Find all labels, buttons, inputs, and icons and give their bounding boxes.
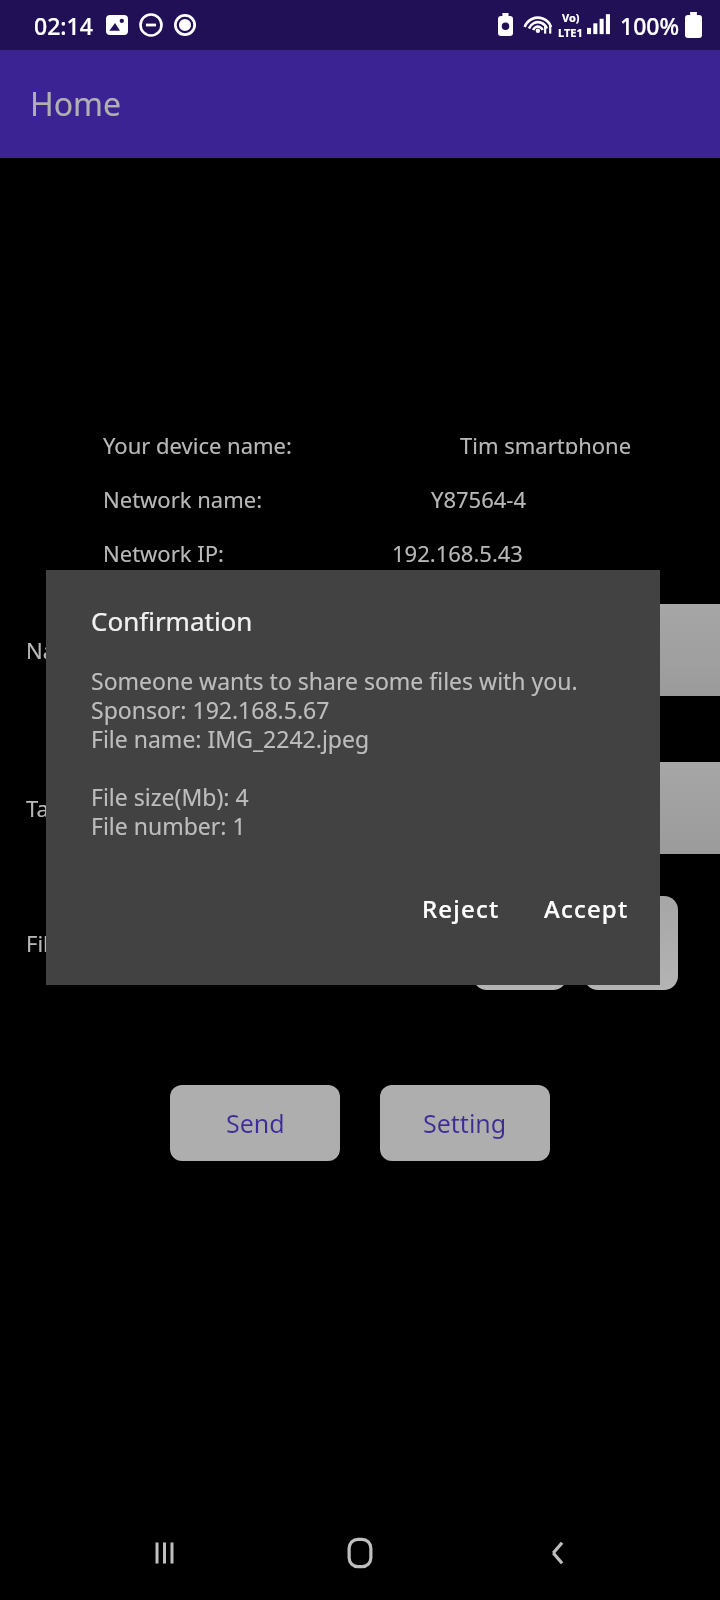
staticText: Accept (544, 892, 629, 925)
button[interactable]: Name field (520, 604, 720, 696)
staticText: 192.168.5.43 (392, 538, 523, 562)
staticText: Your device name: (103, 430, 292, 454)
staticText: File (26, 928, 62, 958)
staticText: Setting (423, 1106, 507, 1140)
button[interactable]: Target field (520, 762, 720, 854)
staticText: Home (30, 82, 122, 126)
button[interactable]: Send (170, 1085, 340, 1161)
button[interactable]: Recent apps (125, 1515, 201, 1591)
button[interactable]: Add file (473, 896, 567, 990)
staticText: 02:14 (34, 10, 93, 41)
staticText: 100% (620, 10, 680, 41)
staticText: Vo) (562, 10, 580, 25)
staticText: Tim smartphone (460, 430, 632, 454)
button[interactable]: Setting (380, 1085, 550, 1161)
button[interactable]: Help (584, 896, 678, 990)
staticText: Y87564-4 (431, 484, 527, 508)
staticText: Network IP: (103, 538, 224, 562)
staticText: Target (26, 793, 92, 823)
staticText: Confirmation (91, 603, 253, 638)
staticText: LTE1 (558, 25, 583, 40)
staticText: Name (26, 635, 89, 665)
staticText: Send (226, 1106, 285, 1140)
staticText: Someone wants to share some files with y… (91, 665, 578, 842)
button[interactable]: Back (520, 1515, 596, 1591)
button[interactable]: Reject (406, 880, 516, 937)
staticText: Reject (422, 892, 500, 925)
staticText: Network name: (103, 484, 263, 508)
button[interactable]: Home (322, 1515, 398, 1591)
button[interactable]: Accept (528, 880, 645, 937)
